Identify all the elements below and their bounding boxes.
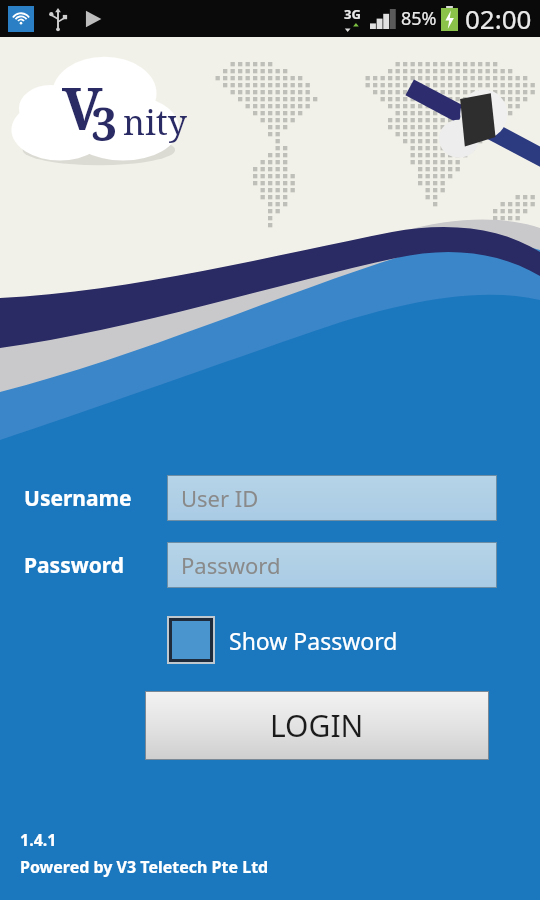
staticText: Powered by V3 Teletech Pte Ltd <box>20 856 269 878</box>
staticText: V <box>62 68 103 147</box>
staticText: 3G <box>344 5 361 23</box>
staticText: Username <box>24 484 132 513</box>
staticText: 3 <box>91 92 117 155</box>
staticText: 85% <box>401 6 437 31</box>
button[interactable]: LOGIN <box>146 692 488 759</box>
button[interactable]: User ID <box>168 476 496 520</box>
staticText: LOGIN <box>270 705 364 746</box>
staticText: User ID <box>181 483 259 513</box>
staticText: Password <box>24 551 125 580</box>
button[interactable]: Password <box>168 543 496 587</box>
staticText: 02:00 <box>465 1 532 36</box>
staticText: 1.4.1 <box>20 829 57 851</box>
button[interactable]: Show Password <box>167 616 398 664</box>
staticText: Password <box>181 550 281 580</box>
staticText: Show Password <box>229 625 398 656</box>
staticText: nity <box>123 99 187 145</box>
